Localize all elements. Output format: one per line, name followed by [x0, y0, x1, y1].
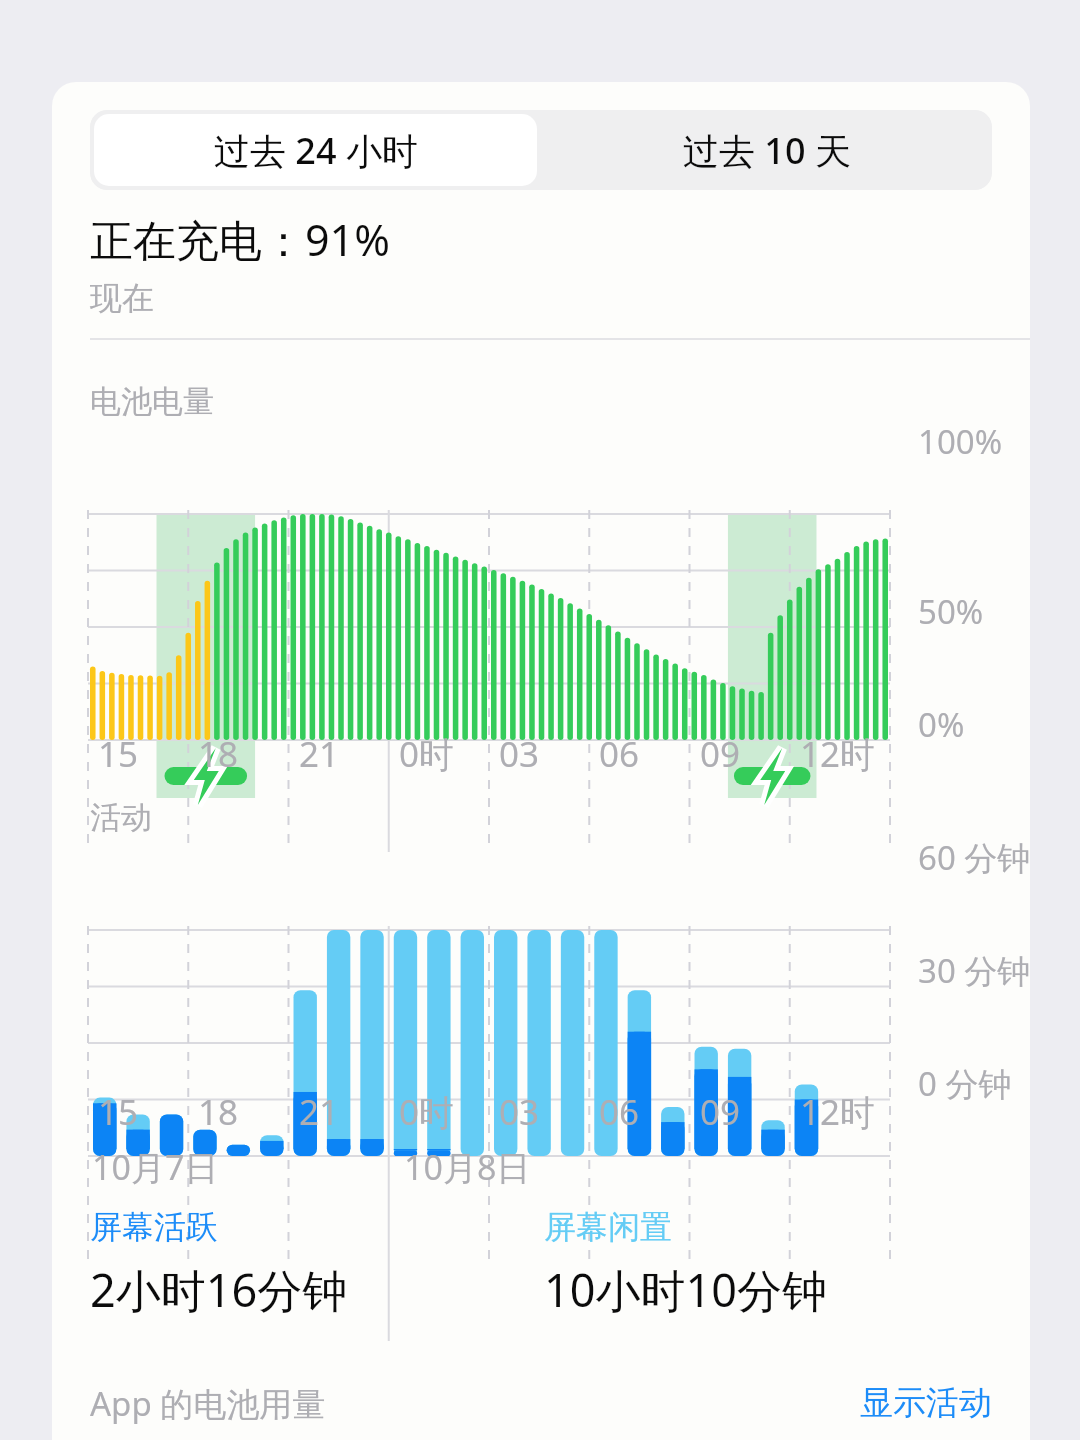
staticText: 电池电量 — [90, 382, 214, 421]
staticText: 屏幕闲置 — [544, 1207, 672, 1247]
button[interactable]: 屏幕闲置 — [544, 1207, 827, 1320]
staticText: 活动 — [90, 798, 152, 837]
staticText: 06 — [599, 730, 640, 778]
staticText: 06 — [599, 1088, 640, 1136]
staticText: 12时 — [800, 730, 876, 778]
button[interactable]: 显示活动 — [860, 1382, 992, 1424]
staticText: 屏幕活跃 — [90, 1207, 218, 1247]
staticText: 2小时16分钟 — [90, 1259, 348, 1320]
staticText: 10小时10分钟 — [544, 1259, 827, 1320]
staticText: 0时 — [399, 1088, 455, 1136]
staticText: 过去 10 天 — [683, 126, 851, 175]
button[interactable]: 过去 24 小时 — [94, 114, 537, 186]
staticText: 10月8日 — [404, 1144, 531, 1190]
button[interactable]: 活动图表 — [52, 848, 1030, 1158]
staticText: 0 分钟 — [918, 1061, 1012, 1106]
button[interactable]: 电池电量图表 — [52, 432, 1030, 742]
staticText: 60 分钟 — [918, 835, 1030, 880]
staticText: 03 — [499, 1088, 540, 1136]
button[interactable]: 屏幕活跃 — [90, 1207, 348, 1320]
staticText: 15 — [98, 730, 139, 778]
staticText: 21 — [299, 1088, 340, 1136]
staticText: 0% — [918, 702, 965, 747]
staticText: 30 分钟 — [918, 948, 1030, 993]
staticText: 0时 — [399, 730, 455, 778]
staticText: 100% — [918, 419, 1003, 464]
staticText: 09 — [700, 1088, 741, 1136]
staticText: 10月7日 — [92, 1144, 219, 1190]
staticText: 18 — [198, 730, 239, 778]
staticText: 21 — [299, 730, 340, 778]
staticText: 03 — [499, 730, 540, 778]
staticText: 过去 24 小时 — [214, 126, 418, 175]
staticText: 正在充电：91% — [90, 210, 390, 269]
staticText: 18 — [198, 1088, 239, 1136]
staticText: 50% — [918, 589, 984, 634]
staticText: 15 — [98, 1088, 139, 1136]
button[interactable]: 过去 10 天 — [541, 110, 992, 190]
staticText: 09 — [700, 730, 741, 778]
staticText: 现在 — [90, 278, 154, 318]
staticText: 12时 — [800, 1088, 876, 1136]
button[interactable]: App 的电池用量 — [90, 1381, 326, 1426]
